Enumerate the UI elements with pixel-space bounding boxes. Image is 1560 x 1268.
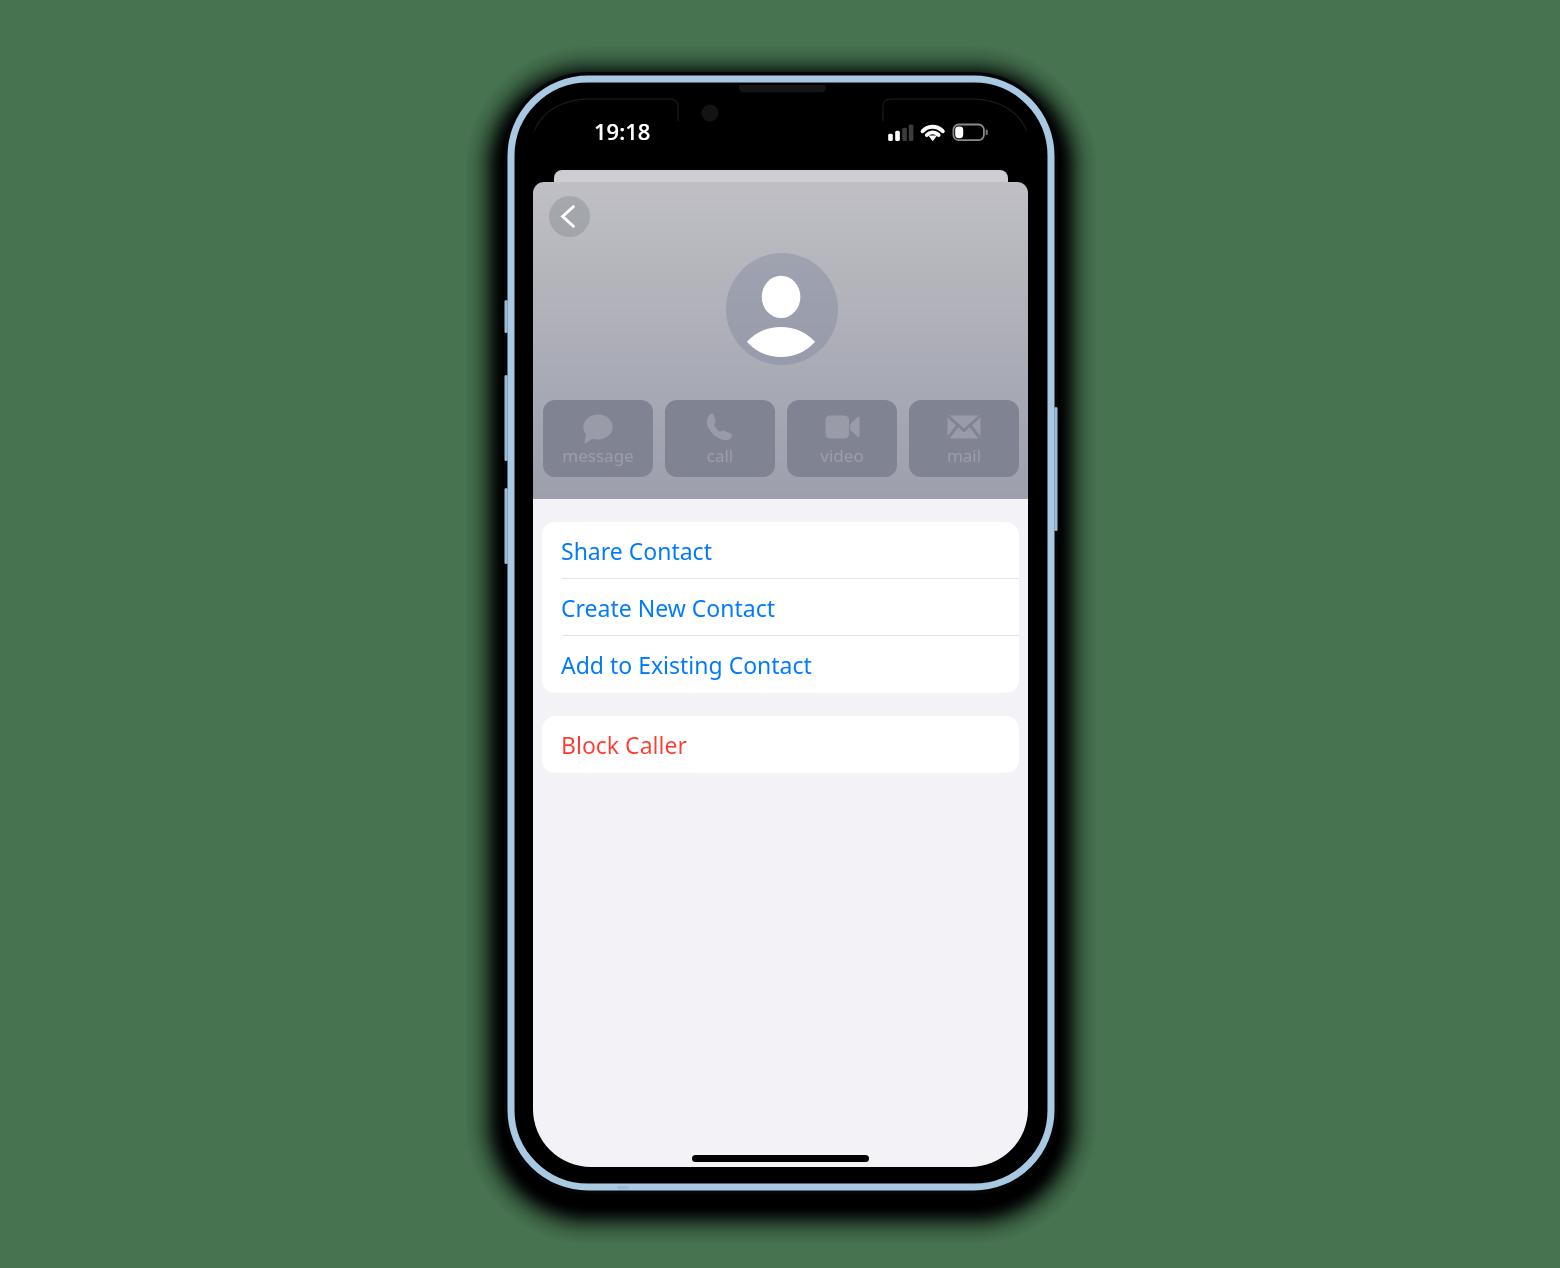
button[interactable]: message — [543, 400, 653, 477]
staticText: call — [665, 444, 775, 467]
button[interactable]: Share Contact — [542, 522, 1019, 579]
button[interactable]: Add to Existing Contact — [542, 636, 1019, 693]
staticText: video — [787, 444, 897, 467]
staticText: 19:18 — [594, 116, 651, 146]
staticText: message — [543, 444, 653, 467]
button[interactable]: Block Caller — [542, 716, 1019, 773]
staticText: Create New Contact — [561, 592, 775, 623]
button[interactable]: video — [787, 400, 897, 477]
button[interactable]: Back — [549, 196, 590, 237]
staticText: Share Contact — [561, 535, 712, 566]
staticText: Add to Existing Contact — [561, 649, 812, 680]
staticText: mail — [909, 444, 1019, 467]
button[interactable]: Create New Contact — [542, 579, 1019, 636]
button[interactable]: mail — [909, 400, 1019, 477]
staticText: Block Caller — [561, 729, 687, 760]
button[interactable]: call — [665, 400, 775, 477]
